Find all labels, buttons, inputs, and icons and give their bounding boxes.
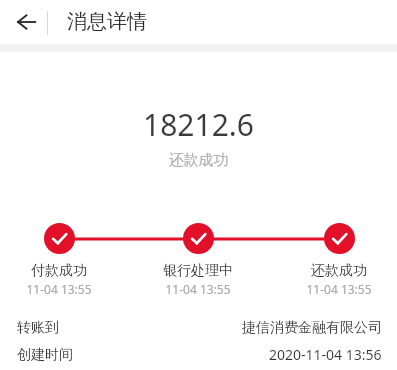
staticText: 11-04 13:55 [26, 281, 92, 297]
staticText: 11-04 13:55 [165, 281, 231, 297]
staticText: 2020-11-04 13:56 [269, 345, 382, 364]
staticText: 11-04 13:55 [306, 281, 372, 297]
staticText: 捷信消费金融有限公司 [242, 319, 382, 337]
staticText: 还款成功 [311, 262, 367, 280]
button[interactable]: 银行处理中 [143, 262, 253, 297]
button[interactable]: 付款成功 [4, 262, 114, 297]
staticText: 银行处理中 [163, 262, 233, 280]
staticText: 转账到 [17, 319, 59, 337]
staticText: 18212.6 [0, 104, 397, 145]
staticText: 创建时间 [17, 346, 73, 364]
button[interactable]: Back [4, 0, 48, 44]
button[interactable]: Step completed [324, 223, 355, 254]
button[interactable]: Step completed [183, 223, 214, 254]
staticText: 还款成功 [0, 151, 397, 170]
button[interactable]: Step completed [44, 223, 75, 254]
button[interactable]: 还款成功 [284, 262, 394, 297]
staticText: 付款成功 [31, 262, 87, 280]
button[interactable]: 转账到 [17, 319, 382, 337]
button[interactable]: 创建时间 [17, 345, 382, 364]
staticText: 消息详情 [67, 9, 147, 34]
